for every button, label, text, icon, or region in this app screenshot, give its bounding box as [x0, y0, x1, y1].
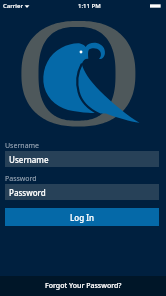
staticText: Username [9, 154, 49, 165]
button[interactable]: Forgot Your Password? [45, 281, 122, 291]
staticText: Password [5, 174, 37, 184]
button[interactable]: Password [5, 184, 159, 200]
staticText: Username [5, 141, 40, 151]
staticText: Carrier [3, 2, 23, 10]
staticText: Log In [70, 212, 95, 223]
button[interactable]: Username [5, 151, 159, 167]
staticText: 1:11 PM [78, 2, 101, 10]
button[interactable]: Log In [5, 208, 159, 226]
staticText: Password [9, 187, 46, 198]
